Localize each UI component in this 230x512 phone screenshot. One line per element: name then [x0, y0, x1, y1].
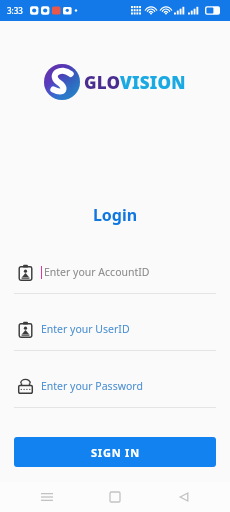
staticText: GLOVISION	[84, 71, 186, 94]
button[interactable]: Home	[93, 482, 137, 512]
button[interactable]: SIGN IN	[14, 437, 216, 467]
button[interactable]: Back	[162, 482, 206, 512]
button[interactable]: AccountID	[0, 256, 230, 294]
staticText: SIGN IN	[91, 445, 140, 460]
button[interactable]: Recents	[25, 482, 69, 512]
staticText: Enter your Password	[41, 379, 143, 393]
staticText: 3:33	[7, 5, 23, 16]
button[interactable]: UserID	[0, 313, 230, 351]
staticText: Enter your AccountID	[44, 265, 150, 279]
staticText: Enter your UserID	[41, 322, 130, 336]
staticText: Login	[0, 204, 230, 226]
button[interactable]: Password	[0, 370, 230, 408]
